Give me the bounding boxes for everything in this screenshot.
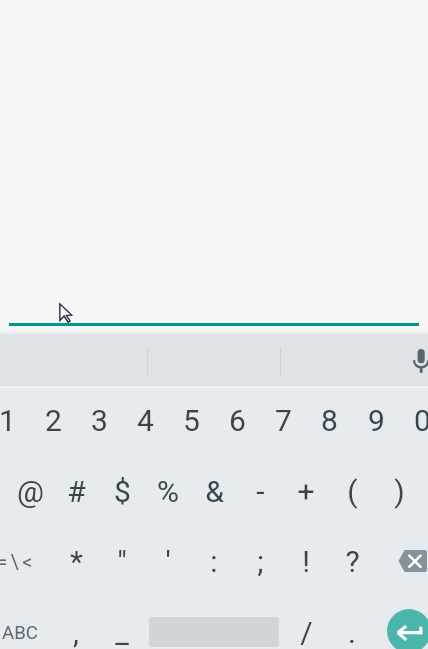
button[interactable]: ? [329, 526, 375, 597]
button[interactable]: - [237, 456, 283, 527]
button[interactable]: 7 [260, 385, 306, 456]
button[interactable]: 8 [306, 385, 352, 456]
staticText: $ [114, 474, 131, 509]
staticText: , [73, 615, 79, 649]
staticText: ' [165, 544, 171, 579]
staticText: 9 [368, 403, 385, 438]
button[interactable]: * [53, 526, 99, 597]
staticText: ! [302, 544, 310, 579]
button[interactable]: Backspace [376, 526, 428, 597]
button[interactable]: ABC [0, 597, 54, 649]
button[interactable]: # [53, 456, 99, 527]
staticText: / [300, 615, 313, 649]
staticText: 6 [229, 403, 246, 438]
staticText: ) [394, 474, 405, 509]
button[interactable]: 5 [168, 385, 214, 456]
button[interactable]: 3 [76, 385, 122, 456]
button[interactable]: Voice input [395, 335, 428, 386]
button[interactable]: & [191, 456, 237, 527]
staticText: 5 [183, 403, 200, 438]
staticText: ( [347, 474, 358, 509]
staticText: 1 [0, 403, 16, 438]
staticText: 0 [414, 403, 428, 438]
staticText: 2 [45, 403, 62, 438]
staticText: ; [257, 544, 264, 579]
button[interactable]: . [329, 597, 375, 649]
staticText: 8 [321, 403, 338, 438]
staticText: =\< [0, 550, 36, 573]
button[interactable]: 6 [214, 385, 260, 456]
button[interactable]: , [53, 597, 99, 649]
button[interactable]: ; [237, 526, 283, 597]
staticText: " [117, 544, 127, 579]
button[interactable]: : [191, 526, 237, 597]
button[interactable]: =\< [0, 526, 50, 597]
staticText: ? [345, 544, 360, 579]
button[interactable]: % [145, 456, 191, 527]
button[interactable]: Enter [387, 609, 428, 649]
button[interactable]: + [283, 456, 329, 527]
button[interactable]: _ [99, 597, 145, 649]
staticText: % [157, 474, 179, 509]
button[interactable]: 2 [30, 385, 76, 456]
button[interactable]: @ [7, 456, 53, 527]
staticText: . [348, 615, 356, 649]
button[interactable]: 9 [353, 385, 399, 456]
staticText: - [256, 474, 265, 509]
button[interactable]: 0 [399, 385, 428, 456]
button[interactable]: $ [99, 456, 145, 527]
button[interactable]: / [283, 597, 329, 649]
staticText: 4 [137, 403, 154, 438]
staticText: # [67, 474, 86, 509]
button[interactable]: ( [329, 456, 375, 527]
staticText: 7 [275, 403, 292, 438]
button[interactable]: 1 [0, 385, 30, 456]
button[interactable]: ! [283, 526, 329, 597]
button[interactable]: ' [145, 526, 191, 597]
button[interactable]: " [99, 526, 145, 597]
staticText: * [70, 544, 83, 579]
staticText: : [210, 544, 218, 579]
button[interactable]: ) [376, 456, 422, 527]
staticText: @ [17, 474, 44, 509]
button[interactable]: 4 [122, 385, 168, 456]
staticText: 3 [91, 403, 108, 438]
staticText: _ [115, 615, 129, 649]
staticText: + [297, 474, 315, 509]
staticText: ABC [2, 622, 38, 644]
staticText: & [205, 474, 224, 509]
